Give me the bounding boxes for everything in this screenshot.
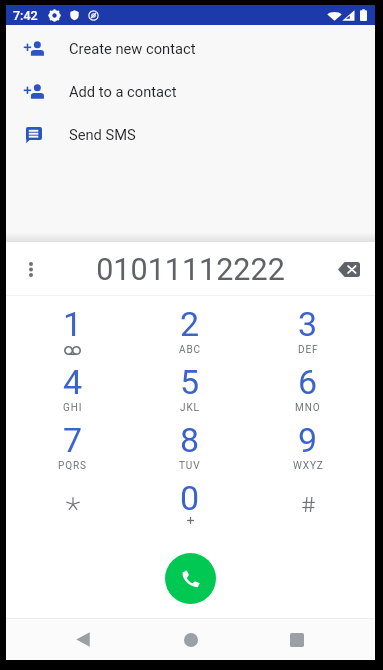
- button[interactable]: 7: [14, 422, 131, 480]
- staticText: Create new contact: [69, 40, 196, 57]
- button[interactable]: 3: [249, 306, 367, 364]
- staticText: GHI: [63, 402, 83, 414]
- button[interactable]: 1: [14, 306, 131, 364]
- button[interactable]: 4: [14, 364, 131, 422]
- button[interactable]: Create new contact: [6, 27, 375, 70]
- staticText: JKL: [180, 402, 200, 414]
- staticText: 1: [63, 304, 83, 344]
- staticText: 2: [180, 304, 200, 344]
- staticText: DEF: [298, 344, 319, 356]
- staticText: 4: [63, 362, 83, 402]
- button[interactable]: Add to a contact: [6, 70, 375, 113]
- staticText: 3: [298, 304, 318, 344]
- button[interactable]: [14, 480, 131, 538]
- staticText: 9: [298, 420, 318, 460]
- button[interactable]: Call: [165, 553, 216, 604]
- staticText: 8: [180, 420, 200, 460]
- staticText: TUV: [179, 460, 201, 472]
- button[interactable]: Recents: [252, 619, 375, 660]
- staticText: Add to a contact: [69, 83, 177, 100]
- button[interactable]: 5: [131, 364, 249, 422]
- staticText: WXYZ: [293, 460, 324, 472]
- staticText: 7: [63, 420, 83, 460]
- button[interactable]: Backspace: [327, 245, 375, 293]
- button[interactable]: Back: [6, 619, 129, 660]
- staticText: MNO: [295, 402, 321, 414]
- button[interactable]: Send SMS: [6, 113, 375, 156]
- button[interactable]: More options: [6, 247, 50, 291]
- button[interactable]: 0: [131, 480, 249, 538]
- button[interactable]: 6: [249, 364, 367, 422]
- staticText: ABC: [179, 344, 201, 356]
- staticText: 5: [180, 362, 200, 402]
- button[interactable]: Home: [129, 619, 252, 660]
- button[interactable]: [249, 480, 367, 538]
- staticText: PQRS: [58, 460, 87, 472]
- button[interactable]: 8: [131, 422, 249, 480]
- staticText: 6: [298, 362, 318, 402]
- staticText: 7:42: [13, 8, 38, 23]
- staticText: 0: [180, 478, 200, 518]
- button[interactable]: 9: [249, 422, 367, 480]
- button[interactable]: 2: [131, 306, 249, 364]
- staticText: 01011112222: [52, 252, 329, 288]
- staticText: Send SMS: [69, 126, 136, 143]
